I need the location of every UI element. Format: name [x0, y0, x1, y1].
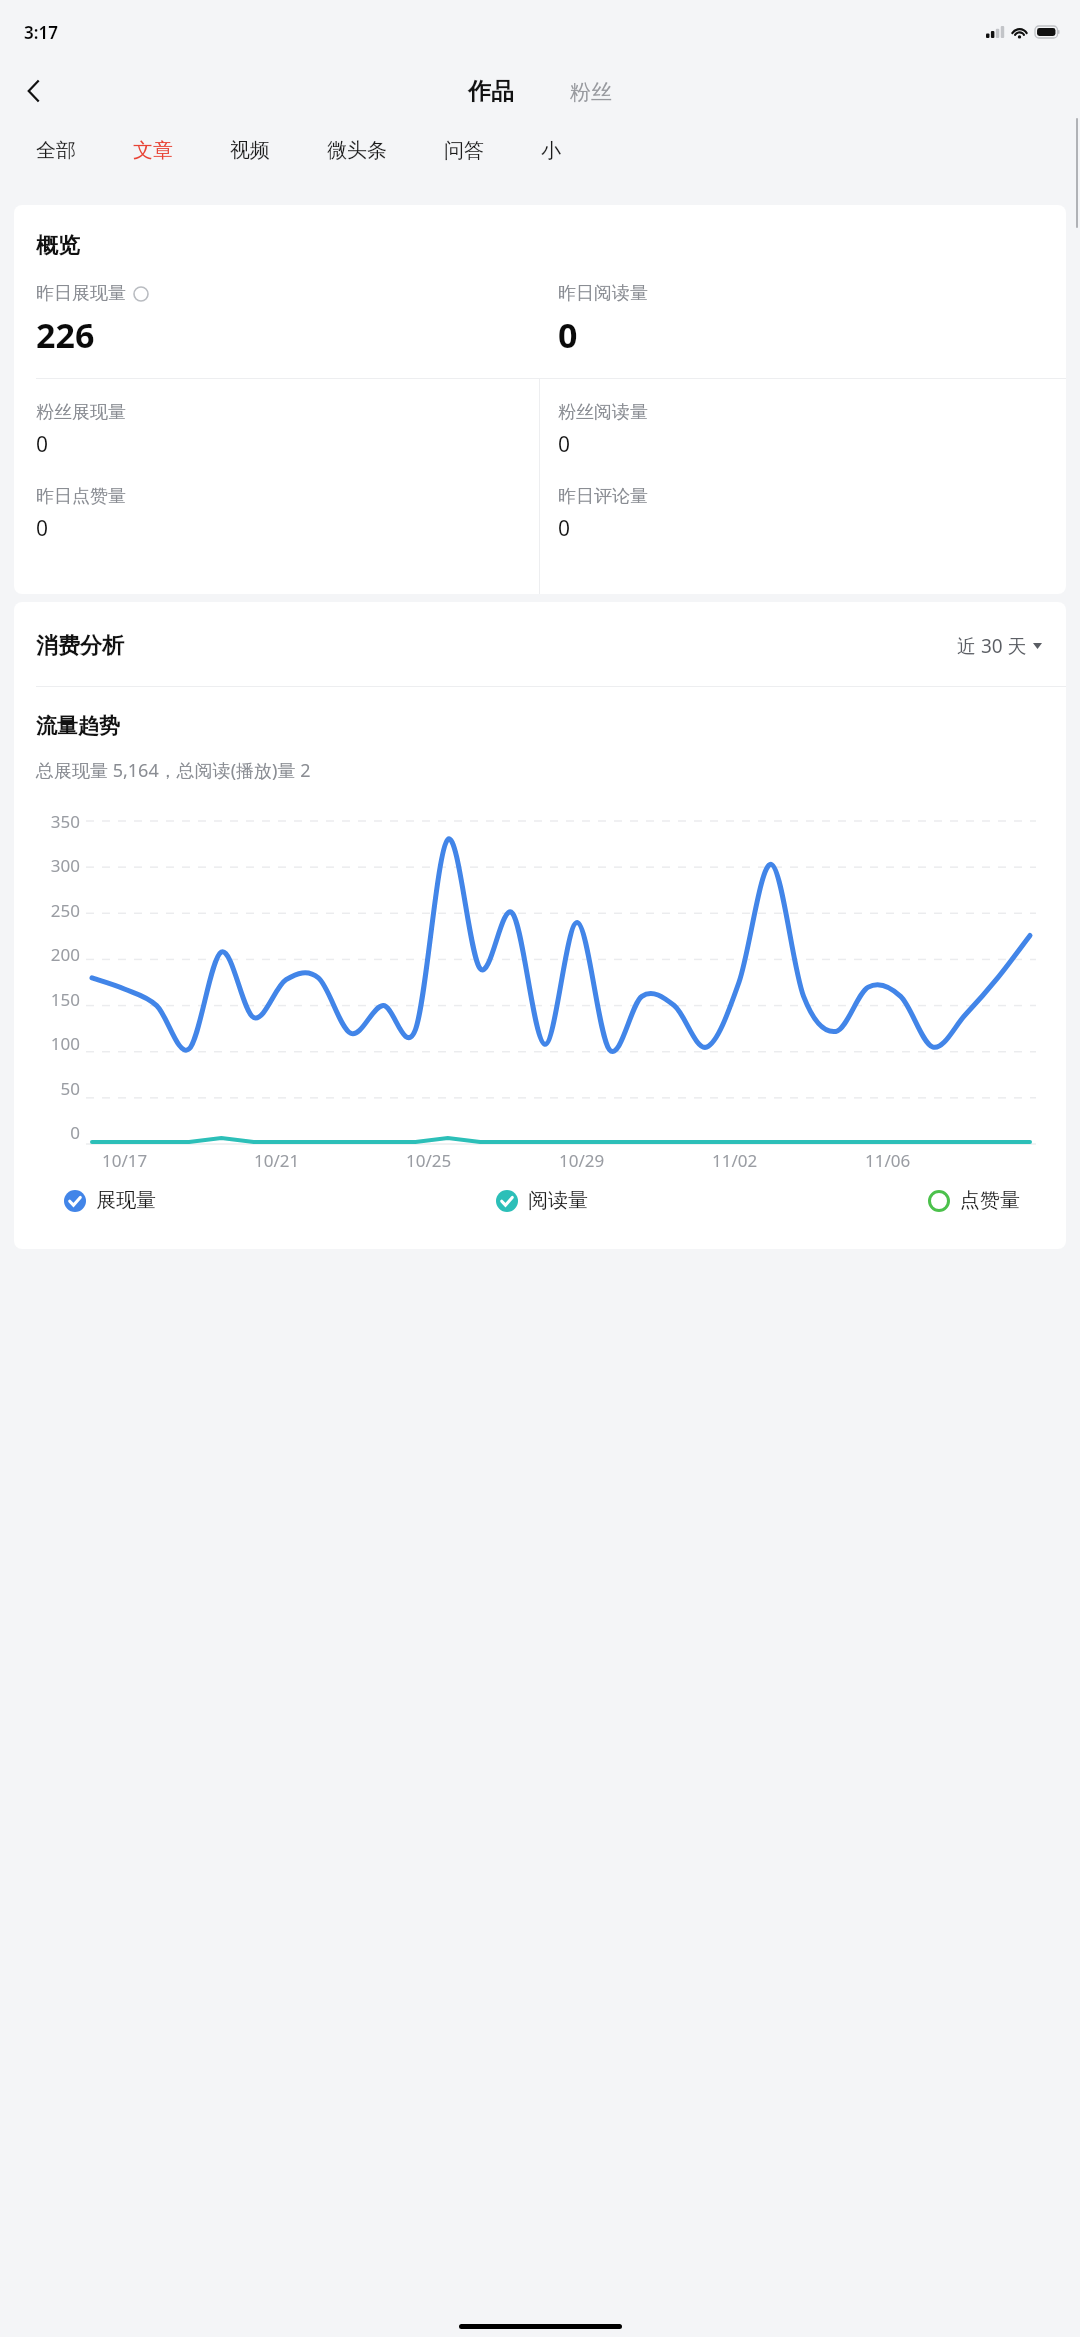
button[interactable]: 点赞量	[928, 1182, 1020, 1219]
staticText: 100	[50, 1032, 80, 1055]
staticText: 10/17	[102, 1149, 148, 1172]
staticText: 350	[50, 810, 80, 833]
button[interactable]: 粉丝	[562, 75, 620, 109]
staticText: 200	[50, 943, 80, 966]
staticText: 消费分析	[36, 632, 124, 660]
button[interactable]: 概览	[14, 205, 1066, 594]
staticText: 昨日点赞量	[36, 485, 126, 508]
staticText: 作品	[468, 77, 514, 106]
staticText: 全部	[36, 138, 76, 163]
staticText: 250	[50, 899, 80, 922]
staticText: 10/21	[254, 1149, 300, 1172]
staticText: 粉丝阅读量	[558, 401, 648, 424]
staticText: 0	[558, 312, 578, 358]
button[interactable]: Back	[10, 67, 58, 115]
button[interactable]: 视频	[220, 130, 280, 171]
staticText: 0	[36, 514, 49, 543]
staticText: 粉丝展现量	[36, 401, 126, 424]
staticText: 文章	[133, 138, 173, 163]
staticText: 11/02	[712, 1149, 758, 1172]
staticText: 粉丝	[570, 79, 612, 105]
staticText: 300	[50, 854, 80, 877]
staticText: 问答	[444, 138, 484, 163]
staticText: 3:17	[24, 21, 58, 44]
staticText: 昨日展现量	[36, 282, 126, 305]
button[interactable]: 问答	[434, 130, 494, 171]
staticText: 近 30 天	[957, 633, 1027, 659]
staticText: 0	[558, 430, 571, 459]
staticText: 0	[70, 1121, 80, 1144]
button[interactable]: 近 30 天	[953, 629, 1046, 663]
staticText: 150	[50, 988, 80, 1011]
staticText: 流量趋势	[36, 713, 120, 739]
staticText: 总展现量 5,164，总阅读(播放)量 2	[36, 758, 311, 783]
button[interactable]: 全部	[26, 130, 86, 171]
staticText: 昨日阅读量	[558, 282, 648, 305]
staticText: 点赞量	[960, 1188, 1020, 1213]
staticText: 10/25	[406, 1149, 452, 1172]
staticText: 展现量	[96, 1188, 156, 1213]
staticText: 微头条	[327, 138, 387, 163]
staticText: 50	[60, 1077, 80, 1100]
button[interactable]: 文章	[123, 130, 183, 171]
staticText: 视频	[230, 138, 270, 163]
staticText: 0	[558, 514, 571, 543]
staticText: 阅读量	[528, 1188, 588, 1213]
button[interactable]: 小	[531, 130, 571, 171]
staticText: 小	[541, 138, 561, 163]
button[interactable]: 微头条	[317, 130, 397, 171]
button[interactable]: 作品	[460, 73, 522, 110]
staticText: 11/06	[865, 1149, 911, 1172]
staticText: 0	[36, 430, 49, 459]
staticText: 昨日评论量	[558, 485, 648, 508]
button[interactable]: 阅读量	[496, 1182, 588, 1219]
staticText: 226	[36, 312, 95, 358]
button[interactable]: 展现量	[64, 1182, 156, 1219]
staticText: 10/29	[559, 1149, 605, 1172]
staticText: 概览	[36, 232, 80, 260]
